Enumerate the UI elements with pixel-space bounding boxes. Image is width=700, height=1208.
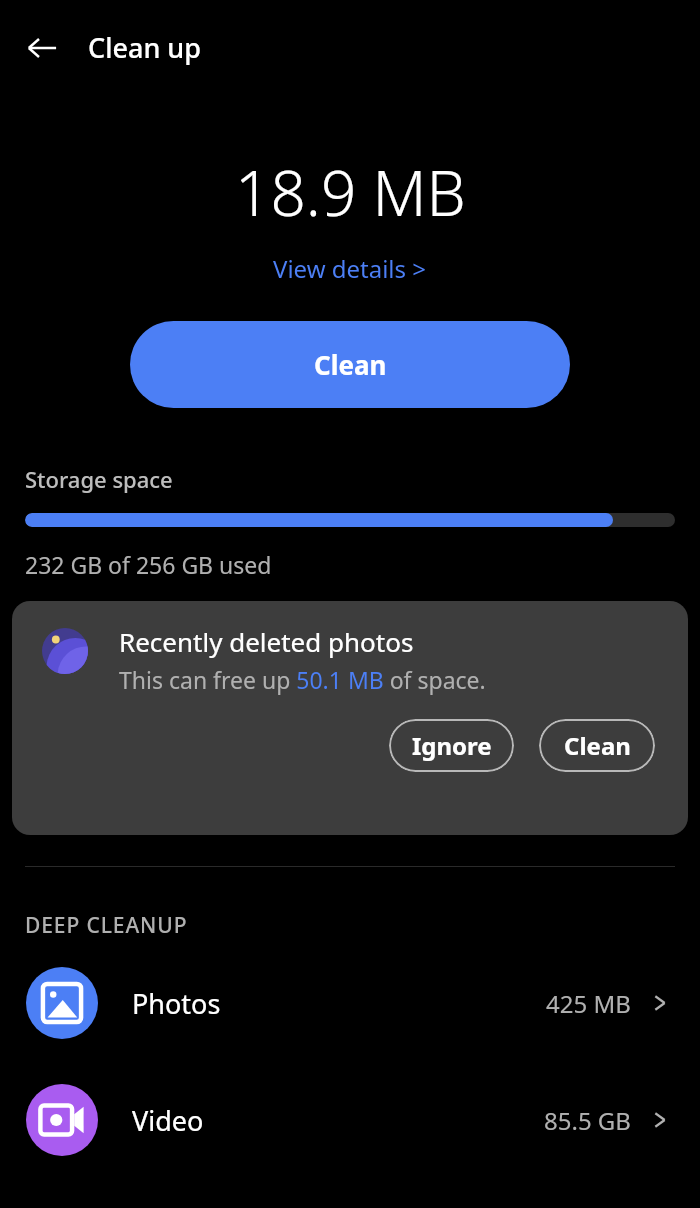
button[interactable]: Back xyxy=(16,22,68,74)
button[interactable]: Recently deleted photos xyxy=(12,601,688,835)
staticText: DEEP CLEANUP xyxy=(25,911,188,940)
staticText: 232 GB of 256 GB used xyxy=(25,549,272,580)
button[interactable]: Ignore xyxy=(389,719,514,772)
staticText: Ignore xyxy=(412,729,492,762)
staticText: Clean xyxy=(564,729,631,762)
staticText: Storage space xyxy=(25,464,173,494)
button[interactable]: Clean xyxy=(130,321,570,408)
staticText: 18.9 MB xyxy=(235,150,466,234)
staticText: This can free up 50.1 MB of space. xyxy=(119,664,486,695)
staticText: View details > xyxy=(273,252,427,285)
staticText: Recently deleted photos xyxy=(119,624,414,659)
staticText: 85.5 GB xyxy=(544,1104,631,1137)
button[interactable]: View details > xyxy=(267,250,433,287)
staticText: Clean xyxy=(314,347,387,382)
staticText: 425 MB xyxy=(546,987,631,1020)
staticText: Clean up xyxy=(88,29,201,66)
button[interactable]: Video xyxy=(0,1084,700,1156)
button[interactable]: Clean xyxy=(539,719,655,772)
staticText: Video xyxy=(132,1102,204,1139)
staticText: Photos xyxy=(132,985,221,1022)
button[interactable]: Photos xyxy=(0,967,700,1039)
